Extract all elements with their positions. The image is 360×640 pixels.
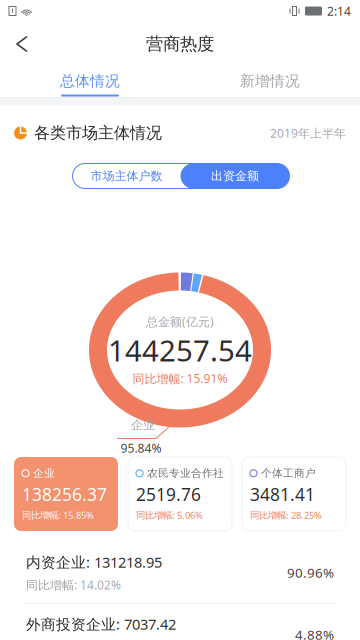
staticText: 90.96% — [287, 564, 334, 581]
button[interactable]: 新增情况 — [180, 66, 360, 98]
staticText: 个体工商户 — [261, 467, 316, 480]
staticText: 2:14 — [327, 3, 351, 19]
staticText: 同比增幅: 15.91% — [132, 370, 227, 386]
staticText: 同比增幅: 28.25% — [250, 509, 322, 521]
staticText: 同比增幅: 15.85% — [22, 509, 94, 521]
button[interactable]: 总体情况 — [0, 66, 180, 98]
staticText: 外商投资企业: 7037.42 — [26, 614, 176, 634]
staticText: 2019年上半年 — [270, 125, 346, 141]
staticText: 企业 — [33, 467, 55, 480]
staticText: 2519.76 — [136, 483, 201, 506]
staticText: 各类市场主体情况 — [34, 123, 162, 143]
button[interactable]: 企业 — [14, 457, 118, 531]
staticText: 95.84% — [120, 440, 161, 456]
staticText: 138256.37 — [22, 483, 107, 506]
staticText: 4.88% — [295, 626, 334, 640]
staticText: 同比增幅: 5.06% — [136, 509, 203, 521]
staticText: 总体情况 — [60, 72, 120, 90]
staticText: 营商热度 — [146, 33, 214, 55]
staticText: 农民专业合作社 — [147, 467, 224, 480]
staticText: 新增情况 — [240, 72, 300, 90]
staticText: 同比增幅: 14.02% — [26, 577, 121, 593]
staticText: 3481.41 — [250, 483, 315, 506]
staticText: 市场主体户数 — [90, 169, 162, 183]
staticText: 出资金额 — [211, 169, 259, 183]
staticText: 企业 — [131, 418, 155, 432]
staticText: 内资企业: 131218.95 — [26, 552, 162, 572]
button[interactable]: 出资金额 — [180, 163, 289, 188]
button[interactable]: 个体工商户 — [242, 457, 346, 531]
staticText: 总金额(亿元) — [146, 314, 214, 329]
button[interactable]: 农民专业合作社 — [128, 457, 232, 531]
button[interactable]: 市场主体户数 — [72, 163, 180, 188]
button[interactable]: Back — [0, 22, 44, 66]
staticText: 144257.54 — [108, 330, 252, 369]
